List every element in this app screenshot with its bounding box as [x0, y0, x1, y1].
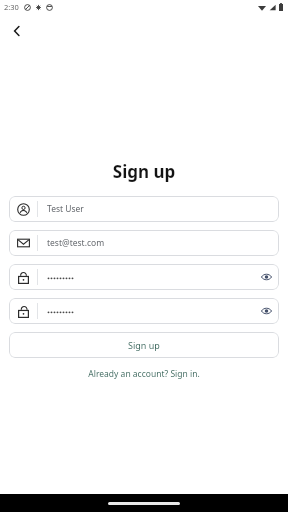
staticText: Sign up: [128, 339, 160, 351]
button[interactable]: Show password: [253, 298, 279, 324]
button[interactable]: Sign up: [9, 332, 279, 358]
button[interactable]: Already an account? Sign in.: [0, 366, 288, 382]
staticText: 2:30: [4, 2, 19, 12]
staticText: Test User: [47, 203, 84, 215]
button[interactable]: Show password: [9, 298, 279, 324]
button[interactable]: Show password: [253, 264, 279, 290]
button[interactable]: Show password: [9, 264, 279, 290]
button[interactable]: Test User: [9, 196, 279, 222]
button[interactable]: Back: [6, 20, 28, 42]
button[interactable]: test@test.com: [9, 230, 279, 256]
staticText: Already an account? Sign in.: [0, 368, 288, 380]
staticText: test@test.com: [47, 237, 105, 249]
staticText: Sign up: [0, 160, 288, 183]
